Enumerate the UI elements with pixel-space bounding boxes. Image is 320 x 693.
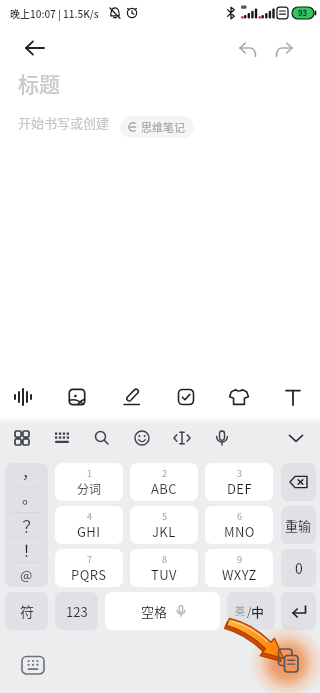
staticText: ， <box>22 463 38 483</box>
button[interactable] <box>221 379 257 415</box>
staticText: 3 <box>237 467 242 480</box>
staticText: JKL <box>152 522 176 541</box>
button[interactable]: 123 <box>55 592 98 630</box>
button[interactable]: 5 <box>130 506 198 544</box>
button[interactable]: 3 <box>205 463 273 501</box>
staticText: 9 <box>237 553 242 566</box>
button[interactable]: 9 <box>205 549 273 587</box>
button[interactable] <box>88 424 116 452</box>
staticText: ！ <box>19 539 35 561</box>
button[interactable]: 符 <box>5 592 48 630</box>
staticText: 123 <box>66 602 88 621</box>
staticText: ？ <box>19 515 35 537</box>
button[interactable] <box>272 40 298 62</box>
button[interactable]: 重输 <box>281 506 316 544</box>
button[interactable] <box>168 424 196 452</box>
staticText: WXYZ <box>222 565 257 584</box>
button[interactable] <box>268 645 304 681</box>
button[interactable]: 1 <box>55 463 123 501</box>
staticText: 8 <box>162 553 167 566</box>
button[interactable] <box>234 40 260 62</box>
staticText: DEF <box>227 479 252 498</box>
staticText: 5 <box>162 510 167 523</box>
button[interactable] <box>281 463 316 501</box>
staticText: MNO <box>224 522 255 541</box>
button[interactable]: 2 <box>130 463 198 501</box>
staticText: 1 <box>87 467 92 480</box>
button[interactable] <box>113 379 149 415</box>
staticText: 0 <box>295 558 303 578</box>
button[interactable] <box>128 424 156 452</box>
staticText: 6 <box>237 510 242 523</box>
button[interactable] <box>282 424 310 452</box>
button[interactable]: 0 <box>281 549 316 587</box>
button[interactable] <box>208 424 236 452</box>
staticText: GHI <box>77 522 101 541</box>
button[interactable]: 空格 <box>105 592 220 630</box>
button[interactable] <box>48 424 76 452</box>
staticText: 2 <box>162 467 167 480</box>
staticText: 7 <box>87 553 92 566</box>
button[interactable]: 7 <box>55 549 123 587</box>
button[interactable]: 6 <box>205 506 273 544</box>
staticText: @ <box>20 565 33 584</box>
staticText: 分词 <box>77 480 102 497</box>
button[interactable]: 8 <box>130 549 198 587</box>
staticText: TUV <box>151 565 177 584</box>
staticText: 英 <box>235 603 245 617</box>
button[interactable] <box>18 652 48 680</box>
button[interactable] <box>275 379 311 415</box>
staticText: / <box>247 603 252 619</box>
staticText: 93 <box>298 7 308 19</box>
button[interactable]: 思维笔记 <box>120 116 194 138</box>
staticText: 空格 <box>141 602 168 621</box>
staticText: 标题 <box>18 68 60 98</box>
staticText: 思维笔记 <box>141 119 185 135</box>
staticText: 。 <box>22 486 38 508</box>
button[interactable]: 英 <box>227 592 275 630</box>
button[interactable] <box>12 33 52 63</box>
staticText: 中 <box>251 602 265 621</box>
button[interactable] <box>168 379 204 415</box>
staticText: 重输 <box>285 516 312 535</box>
button[interactable] <box>281 592 316 630</box>
button[interactable]: 4 <box>55 506 123 544</box>
button[interactable] <box>8 424 36 452</box>
staticText: ABC <box>151 479 177 498</box>
button[interactable] <box>59 379 95 415</box>
staticText: PQRS <box>71 565 107 584</box>
button[interactable]: ， <box>5 463 48 587</box>
staticText: 晚上10:07 | 11.5K/s <box>10 6 99 20</box>
staticText: 4 <box>87 510 92 523</box>
staticText: 符 <box>20 601 34 621</box>
staticText: 开始书写或创建 <box>18 113 110 132</box>
button[interactable] <box>5 379 41 415</box>
